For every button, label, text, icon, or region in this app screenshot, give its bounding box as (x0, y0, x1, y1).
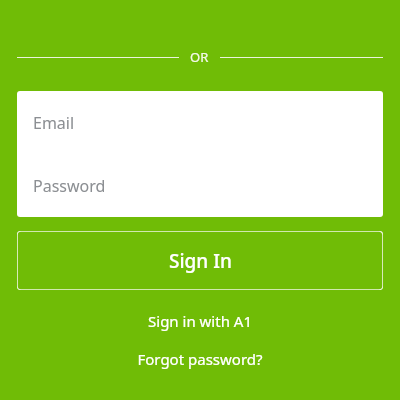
button[interactable]: Email (17, 91, 383, 154)
staticText: Password (33, 175, 106, 197)
staticText: Sign in with A1 (148, 311, 252, 331)
staticText: Forgot password? (137, 349, 263, 369)
button[interactable]: Password (17, 154, 383, 217)
staticText: OR (190, 48, 209, 66)
button[interactable]: Sign In (17, 231, 383, 290)
button[interactable]: Forgot password? (0, 345, 400, 373)
button[interactable]: Sign in with A1 (0, 307, 400, 335)
staticText: Email (33, 112, 75, 134)
staticText: Sign In (169, 248, 232, 274)
